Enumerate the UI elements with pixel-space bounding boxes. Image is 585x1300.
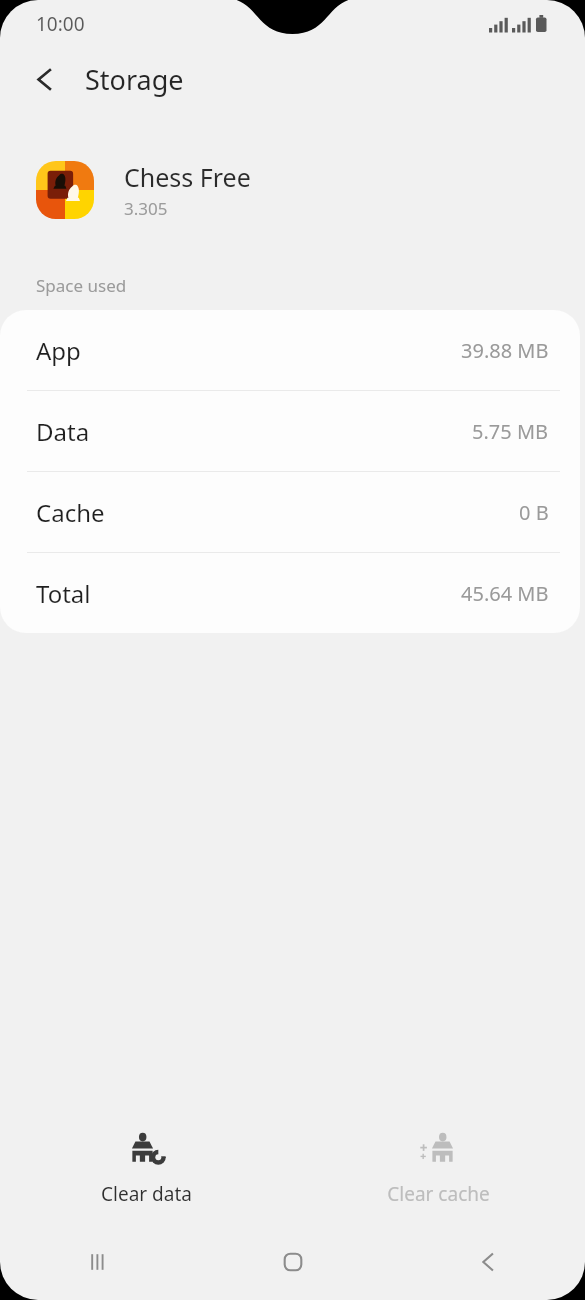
button[interactable]: Home (195, 1224, 390, 1300)
staticText: 10:00 (36, 11, 85, 37)
staticText: 5.75 MB (472, 418, 549, 445)
staticText: Clear data (101, 1181, 192, 1207)
staticText: 0 B (519, 499, 549, 526)
button[interactable]: Cache (0, 472, 580, 553)
staticText: 3.305 (124, 197, 168, 220)
button[interactable]: App (0, 310, 580, 391)
staticText: 39.88 MB (461, 337, 549, 364)
staticText: Total (36, 577, 91, 610)
button[interactable]: Back (16, 51, 72, 107)
staticText: Data (36, 415, 90, 448)
button[interactable]: Back (390, 1224, 585, 1300)
staticText: Clear cache (387, 1181, 490, 1207)
staticText: Storage (85, 61, 184, 98)
staticText: Space used (36, 274, 127, 297)
button[interactable]: Data (0, 391, 580, 472)
button[interactable]: Recents (0, 1224, 195, 1300)
staticText: Cache (36, 496, 105, 529)
staticText: 45.64 MB (461, 580, 549, 607)
button[interactable]: Total (0, 553, 580, 633)
staticText: Chess Free (124, 160, 251, 194)
button[interactable]: Clear data (0, 1112, 292, 1224)
staticText: App (36, 334, 81, 367)
button[interactable]: Clear cache (292, 1112, 585, 1224)
